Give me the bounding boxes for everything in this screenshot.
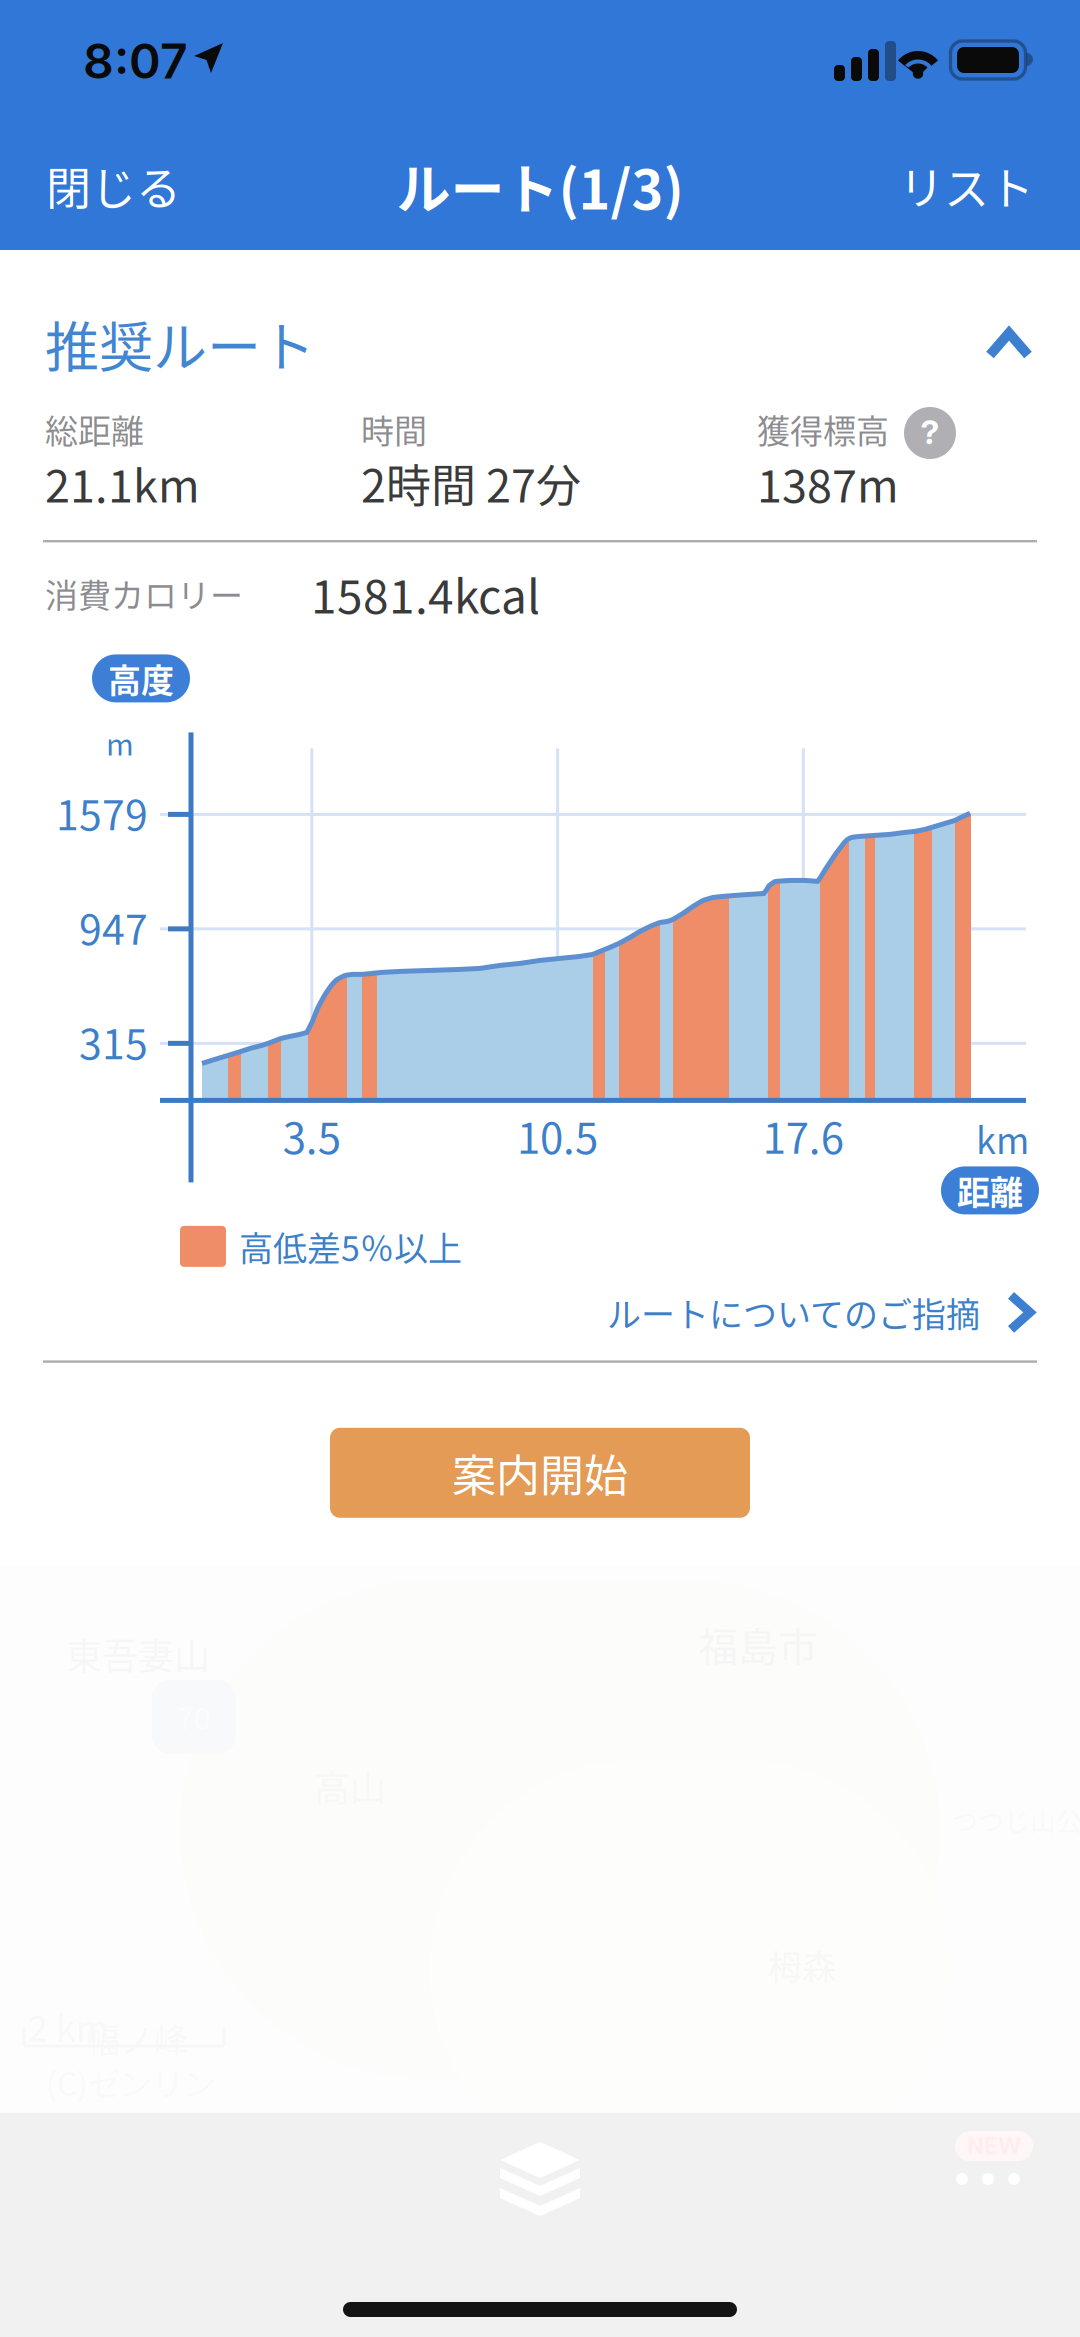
button[interactable]: 折りたたむ [949,298,1080,390]
staticText: 2時間 27分 [361,450,581,516]
staticText: 距離 [957,1166,1023,1214]
staticText: ルートについてのご指摘 [607,1288,980,1337]
staticText: 推奨ルート [45,305,315,383]
staticText: 1579 [56,783,148,842]
staticText: 947 [79,897,148,957]
staticText: 獲得標高 [757,405,889,453]
staticText: 案内開始 [452,1441,628,1505]
button[interactable]: 案内開始 [330,1428,750,1518]
button[interactable]: 地図の種類 [464,2112,616,2246]
staticText: ルート(1/3) [396,147,683,225]
staticText: 1581.4kcal [311,560,540,627]
staticText: リスト [899,153,1034,219]
staticText: 17.6 [763,1105,844,1166]
staticText: 10.5 [517,1105,598,1166]
staticText: 閉じる [46,153,181,219]
button[interactable]: リスト [853,131,1080,241]
staticText: 3.5 [283,1105,341,1166]
staticText: 一切経山 [200,1337,336,1387]
staticText: 高度 [108,654,174,702]
staticText: 総距離 [45,405,144,453]
staticText: 1387m [757,450,899,516]
staticText: NEW [967,2132,1021,2160]
staticText: 高低差5％以上 [239,1222,462,1271]
staticText: 時間 [361,405,427,453]
staticText: 21.1km [45,450,200,516]
button[interactable]: 閉じる [0,131,227,241]
button[interactable]: その他 [933,2117,1058,2203]
staticText: ? [920,412,939,452]
staticText: 315 [79,1012,148,1071]
staticText: 吾妻小富士 [368,1497,538,1547]
staticText: 8:07 [83,32,188,90]
button[interactable]: ルートについてのご指摘 [0,1272,1080,1360]
staticText: m [106,721,134,764]
staticText: km [976,1112,1029,1164]
staticText: 消費カロリー [45,569,243,617]
